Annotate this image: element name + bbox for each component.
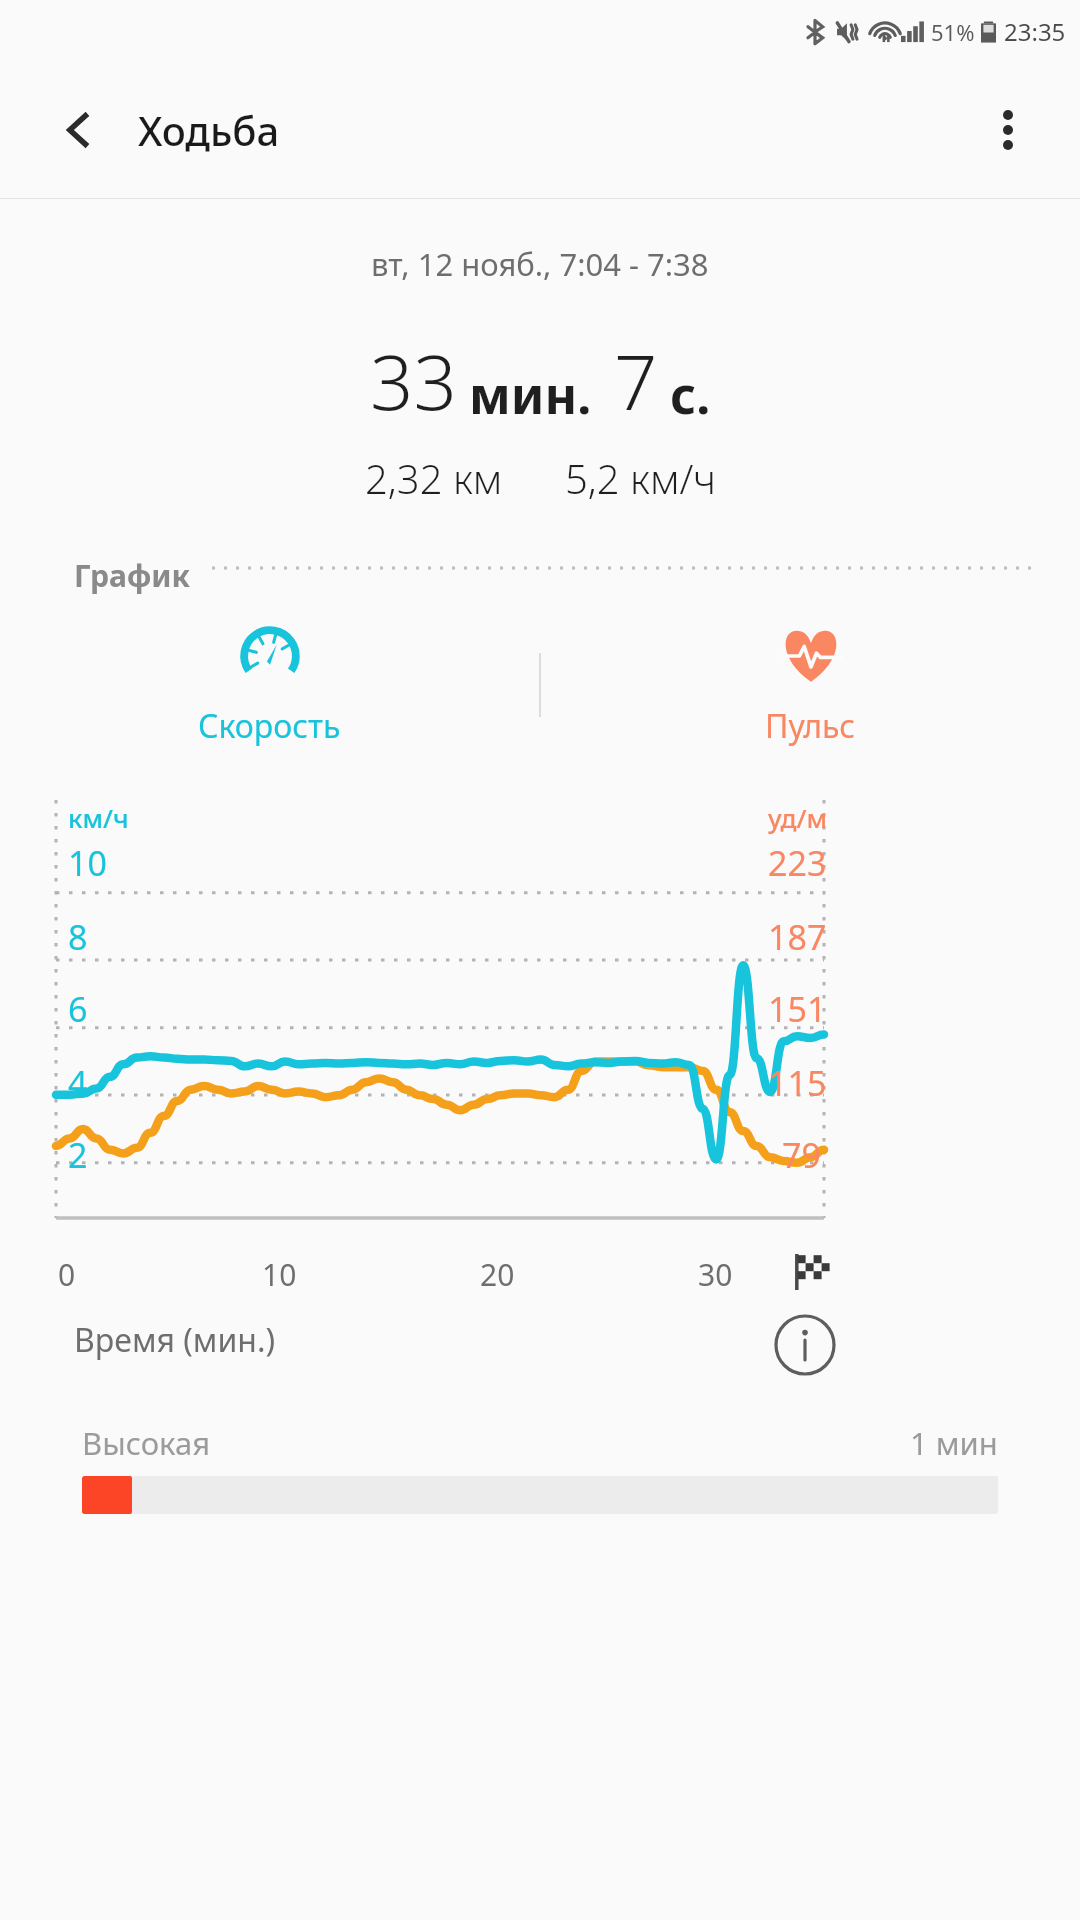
staticText: 8 (68, 914, 88, 960)
staticText: 51% (931, 17, 975, 47)
staticText: мин. (469, 361, 592, 429)
staticText: 10 (68, 840, 107, 886)
button[interactable]: Back (44, 94, 116, 166)
staticText: Пульс (765, 704, 856, 748)
staticText: 23:35 (1004, 15, 1066, 48)
staticText: вт, 12 нояб., 7:04 - 7:38 (371, 243, 709, 285)
staticText: с. (670, 361, 711, 429)
staticText: График (74, 555, 190, 596)
staticText: Скорость (198, 704, 341, 748)
staticText: 33 (370, 329, 457, 433)
staticText: 7 (614, 329, 658, 433)
staticText: 79 (782, 1132, 821, 1178)
staticText: 4 (68, 1060, 88, 1106)
button[interactable]: More options (972, 94, 1044, 166)
staticText: Высокая (82, 1422, 211, 1464)
staticText: 10 (262, 1254, 297, 1295)
button[interactable]: Скорость (0, 600, 539, 770)
staticText: уд/м (768, 800, 827, 835)
staticText: 30 (698, 1254, 733, 1295)
staticText: Ходьба (138, 103, 280, 157)
staticText: 2 (68, 1132, 88, 1178)
staticText: 6 (68, 986, 88, 1032)
staticText: км/ч (68, 800, 129, 835)
staticText: 187 (768, 914, 827, 960)
staticText: 0 (58, 1254, 76, 1295)
staticText: 2,32 км (365, 451, 503, 505)
button[interactable]: Info (768, 1308, 842, 1382)
staticText: 5,2 км/ч (565, 451, 716, 505)
staticText: 151 (768, 986, 827, 1032)
staticText: 115 (768, 1060, 827, 1106)
staticText: 20 (480, 1254, 515, 1295)
staticText: Время (мин.) (74, 1318, 276, 1362)
staticText: 1 мин (910, 1422, 998, 1464)
button[interactable]: Пульс (541, 600, 1080, 770)
staticText: 223 (768, 840, 827, 886)
